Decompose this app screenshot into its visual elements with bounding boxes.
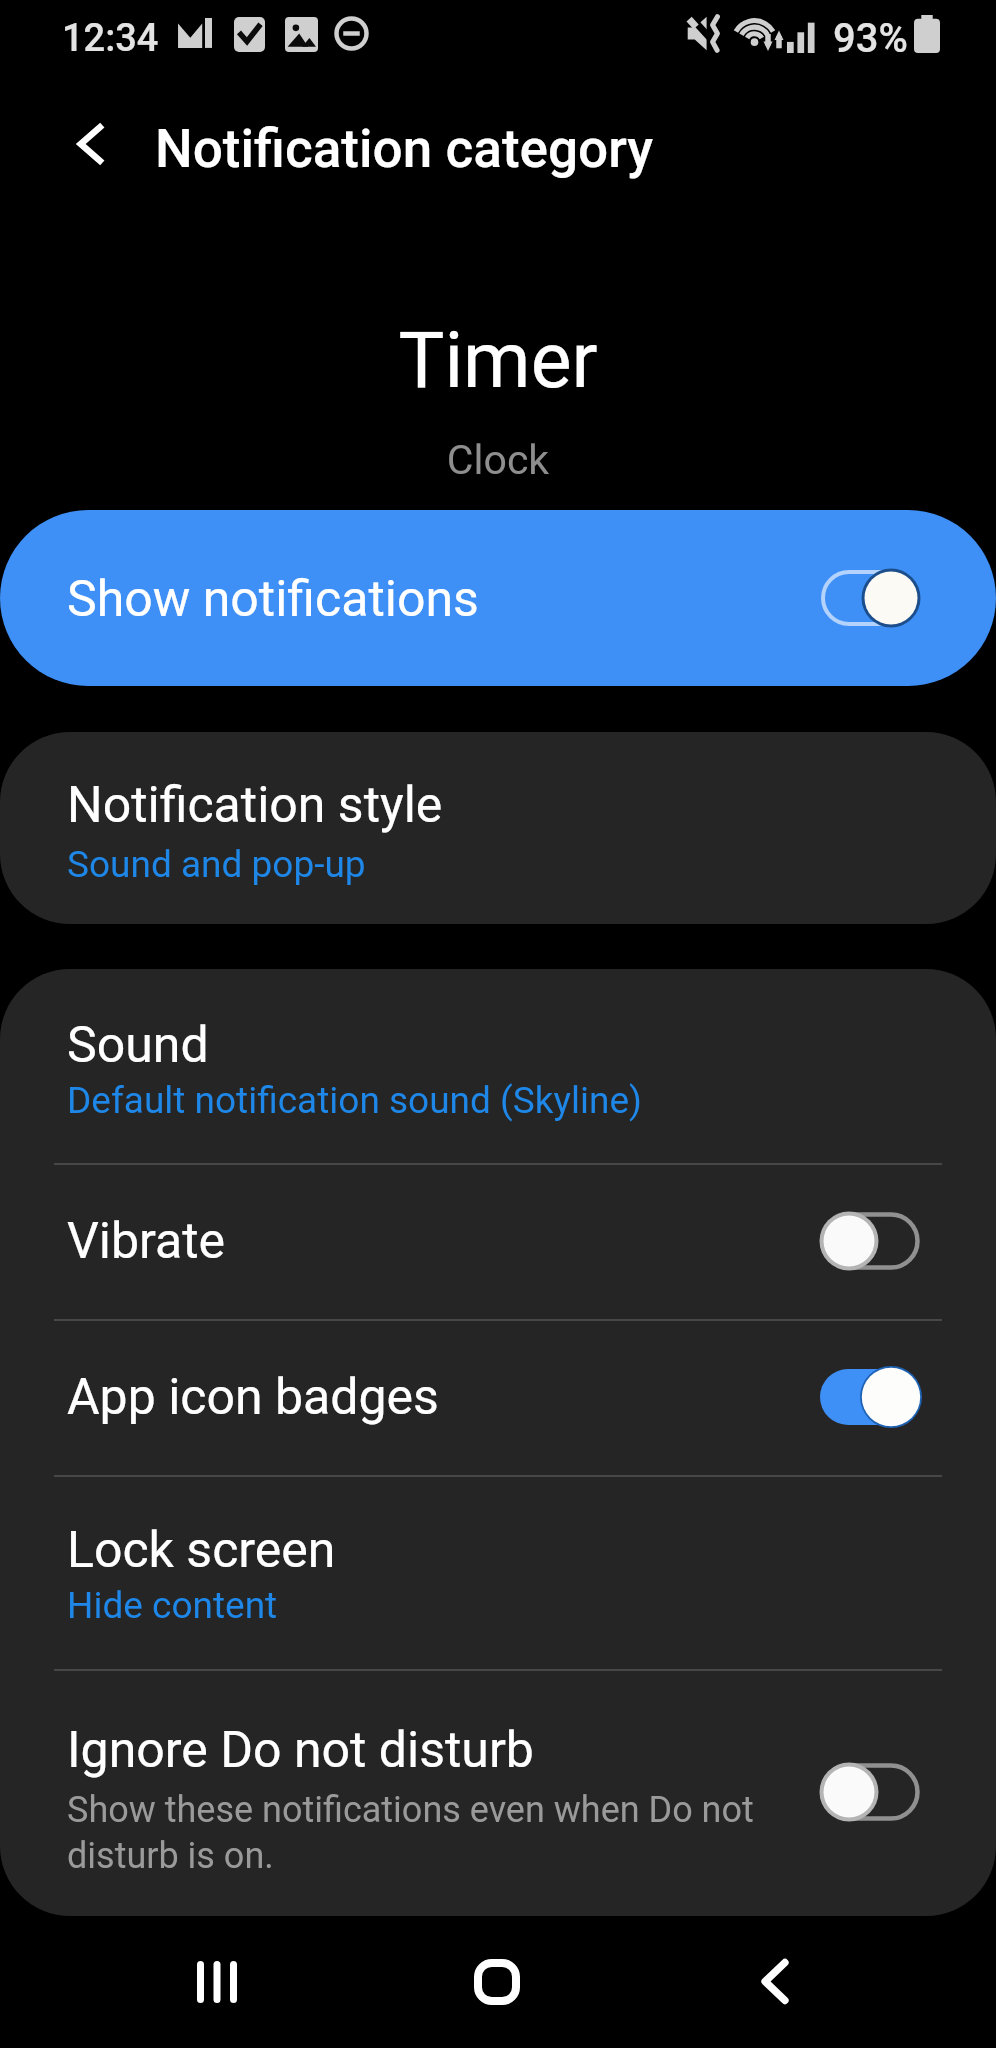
- button[interactable]: Vibrate, off: [820, 1212, 920, 1270]
- button[interactable]: Show notifications, on: [820, 569, 920, 627]
- staticText: Lock screen: [67, 1521, 336, 1580]
- button[interactable]: Show notifications: [0, 510, 996, 686]
- staticText: Notification style: [67, 776, 443, 835]
- button[interactable]: Ignore Do not disturb: [0, 1669, 996, 1916]
- button[interactable]: Home: [427, 1913, 567, 2048]
- staticText: Hide content: [67, 1584, 278, 1627]
- button[interactable]: App icon badges: [0, 1319, 996, 1475]
- staticText: 12:34: [62, 16, 159, 61]
- staticText: Vibrate: [67, 1212, 226, 1271]
- staticText: Show these notifications even when Do no…: [67, 1789, 767, 1876]
- button[interactable]: App icon badges, on: [820, 1368, 920, 1426]
- staticText: Clock: [0, 436, 996, 484]
- button[interactable]: Back: [42, 94, 132, 194]
- button[interactable]: Sound: [0, 969, 996, 1163]
- staticText: Ignore Do not disturb: [67, 1721, 534, 1780]
- staticText: Timer: [0, 316, 996, 406]
- button[interactable]: Notification style: [0, 732, 996, 924]
- button[interactable]: Back: [705, 1913, 845, 2048]
- staticText: App icon badges: [67, 1368, 439, 1427]
- staticText: Sound: [67, 1016, 209, 1075]
- staticText: Show notifications: [67, 570, 479, 629]
- staticText: 93%: [833, 15, 908, 62]
- button[interactable]: Recents: [147, 1913, 287, 2048]
- button[interactable]: Ignore Do not disturb, off: [820, 1763, 920, 1821]
- staticText: Notification category: [155, 118, 654, 180]
- staticText: Default notification sound (Skyline): [67, 1079, 642, 1122]
- button[interactable]: Lock screen: [0, 1475, 996, 1669]
- staticText: Sound and pop-up: [67, 843, 366, 886]
- button[interactable]: Vibrate: [0, 1163, 996, 1319]
